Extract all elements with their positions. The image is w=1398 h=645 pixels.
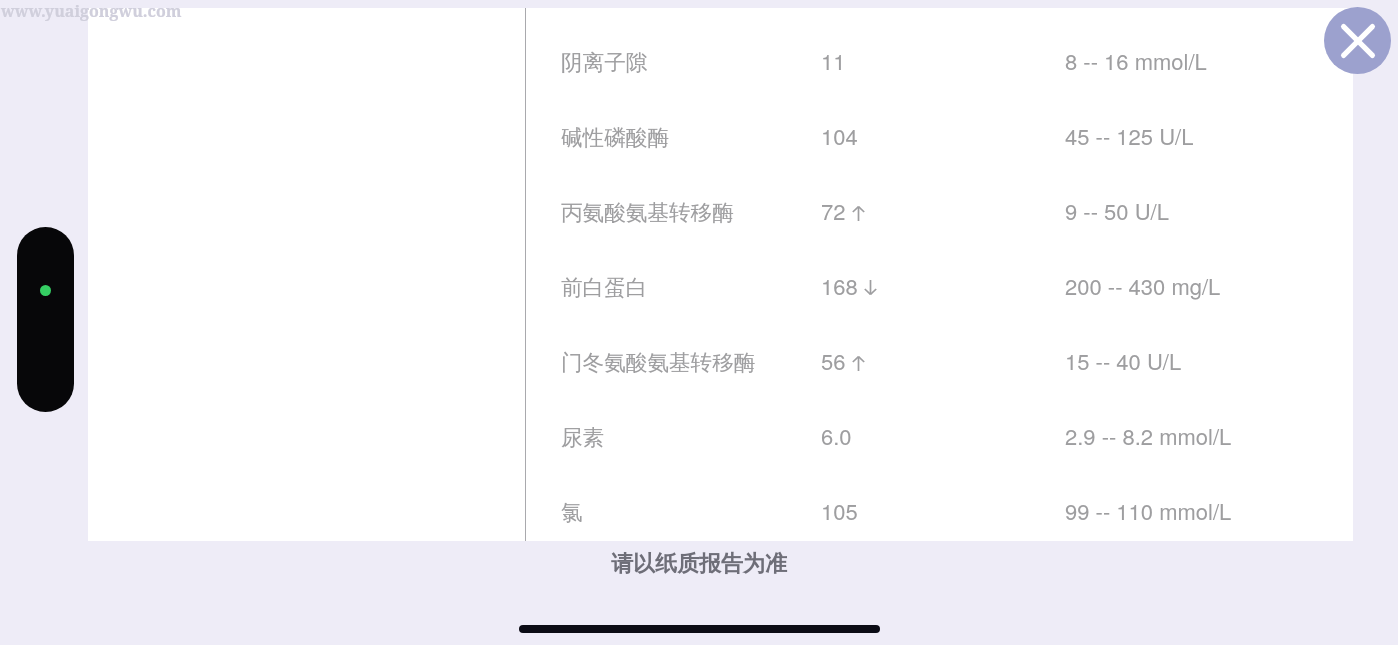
button[interactable]: 门冬氨酸氨基转移酶	[88, 325, 1353, 400]
button[interactable]: 丙氨酸氨基转移酶	[88, 175, 1353, 250]
staticText: 56	[821, 345, 846, 377]
staticText: 碱性磷酸酶	[561, 124, 821, 151]
staticText: 请以纸质报告为准	[611, 550, 787, 578]
staticText: 6.0	[821, 420, 852, 452]
staticText: 2.9 -- 8.2 mmol/L	[1065, 420, 1232, 452]
staticText: 15 -- 40 U/L	[1065, 345, 1182, 377]
staticText: 200 -- 430 mg/L	[1065, 270, 1221, 302]
button[interactable]: 阴离子隙	[88, 25, 1353, 100]
button[interactable]: 前白蛋白	[88, 250, 1353, 325]
button[interactable]: Close	[1324, 7, 1391, 74]
staticText: 45 -- 125 U/L	[1065, 120, 1194, 152]
staticText: 168	[821, 270, 858, 302]
staticText: 99 -- 110 mmol/L	[1065, 495, 1232, 527]
button[interactable]: 尿素	[88, 400, 1353, 475]
staticText: 尿素	[561, 424, 821, 451]
staticText: 氯	[561, 499, 821, 526]
staticText: 门冬氨酸氨基转移酶	[561, 349, 821, 376]
staticText: www.yuaigongwu.com	[1, 0, 182, 22]
staticText: 105	[821, 495, 858, 527]
button[interactable]: 碱性磷酸酶	[88, 100, 1353, 175]
staticText: 阴离子隙	[561, 49, 821, 76]
staticText: 8 -- 16 mmol/L	[1065, 45, 1207, 77]
staticText: 72	[821, 195, 846, 227]
staticText: 前白蛋白	[561, 274, 821, 301]
staticText: 9 -- 50 U/L	[1065, 195, 1169, 227]
staticText: 104	[821, 120, 858, 152]
staticText: 丙氨酸氨基转移酶	[561, 199, 821, 226]
staticText: 11	[821, 45, 846, 77]
button[interactable]: 氯	[88, 475, 1353, 550]
